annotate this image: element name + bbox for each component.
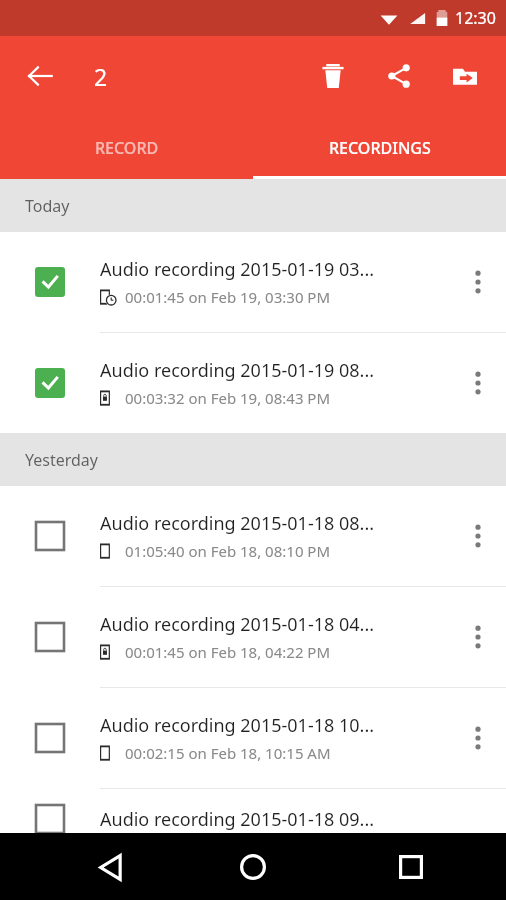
button[interactable]: Selected: [0, 232, 506, 332]
staticText: RECORDINGS: [329, 137, 431, 159]
button[interactable]: Delete: [308, 51, 358, 101]
button[interactable]: Home: [228, 842, 278, 892]
button[interactable]: Not selected: [0, 688, 100, 788]
button[interactable]: Back: [14, 50, 66, 102]
button[interactable]: Not selected: [0, 587, 100, 687]
staticText: Audio recording 2015-01-18 09...: [100, 807, 375, 832]
button[interactable]: Move to folder: [440, 51, 490, 101]
button[interactable]: More options: [450, 486, 506, 586]
staticText: 00:01:45 on Feb 19, 03:30 PM: [125, 287, 331, 307]
button[interactable]: More options: [450, 232, 506, 332]
staticText: 00:01:45 on Feb 18, 04:22 PM: [125, 642, 331, 662]
staticText: Audio recording 2015-01-18 04...: [100, 612, 375, 637]
staticText: 01:05:40 on Feb 18, 08:10 PM: [125, 541, 331, 561]
button[interactable]: Back: [86, 842, 136, 892]
button[interactable]: RECORDINGS: [253, 116, 506, 179]
button[interactable]: More options: [450, 688, 506, 788]
staticText: Audio recording 2015-01-18 10...: [100, 713, 375, 738]
staticText: 00:03:32 on Feb 19, 08:43 PM: [125, 388, 331, 408]
button[interactable]: Not selected: [0, 486, 506, 586]
button[interactable]: More options: [450, 587, 506, 687]
staticText: Audio recording 2015-01-19 08...: [100, 358, 375, 383]
button[interactable]: RECORD: [0, 116, 253, 179]
button[interactable]: Selected: [0, 333, 506, 433]
staticText: 12:30: [455, 7, 496, 29]
button[interactable]: Share: [374, 51, 424, 101]
staticText: Audio recording 2015-01-19 03...: [100, 257, 375, 282]
staticText: Yesterday: [25, 449, 99, 471]
button[interactable]: Not selected: [0, 688, 506, 788]
button[interactable]: Not selected: [0, 587, 506, 687]
button[interactable]: Selected: [0, 232, 100, 332]
staticText: RECORD: [95, 137, 159, 159]
button[interactable]: Recent apps: [386, 842, 436, 892]
button[interactable]: Audio recording 2015-01-18 09...: [0, 789, 506, 849]
staticText: 2: [94, 61, 108, 92]
button[interactable]: Not selected: [0, 486, 100, 586]
button[interactable]: More options: [450, 333, 506, 433]
staticText: Audio recording 2015-01-18 08...: [100, 511, 375, 536]
staticText: 00:02:15 on Feb 18, 10:15 AM: [125, 743, 331, 763]
button[interactable]: Selected: [0, 333, 100, 433]
staticText: Today: [25, 195, 70, 217]
